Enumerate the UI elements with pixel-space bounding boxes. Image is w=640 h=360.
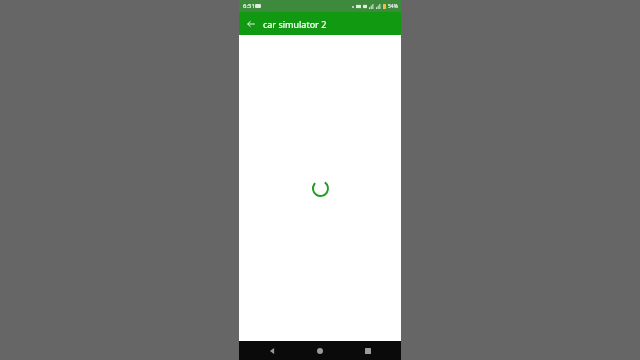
staticText: 6:51 <box>243 2 255 10</box>
button[interactable]: Back <box>242 15 260 33</box>
staticText: car simulator 2 <box>263 18 327 30</box>
button[interactable]: Recent apps <box>353 341 383 360</box>
button[interactable]: Home <box>305 341 335 360</box>
button[interactable]: Back <box>257 341 287 360</box>
staticText: 54% <box>388 3 398 10</box>
